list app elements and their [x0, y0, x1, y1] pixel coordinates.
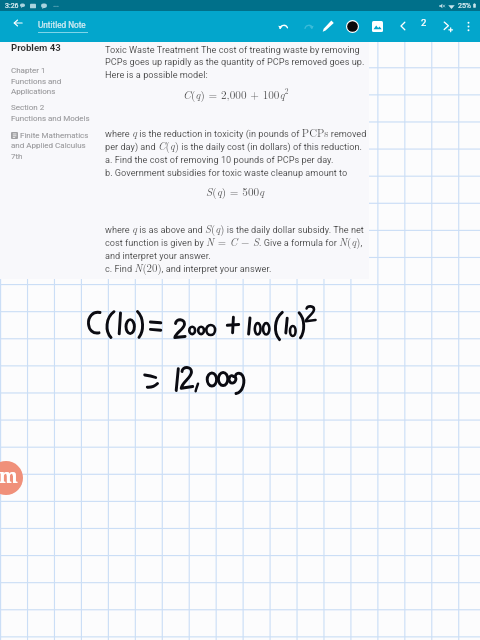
staticText: Section 2 Functions and Models: [11, 103, 90, 123]
button[interactable]: Undo: [272, 15, 294, 37]
button[interactable]: 2: [413, 11, 435, 33]
staticText: Problem 43: [11, 42, 61, 53]
staticText: Chapter 1 Functions and Applications: [11, 66, 62, 96]
staticText: Untitled Note: [38, 20, 86, 30]
staticText: and Applied Calculus 7th: [11, 141, 86, 161]
button[interactable]: Insert image: [366, 15, 388, 37]
button[interactable]: Pen: [317, 15, 339, 37]
staticText: 2: [421, 17, 427, 28]
staticText: Toxic Waste Treatment The cost of treati…: [105, 44, 365, 80]
staticText: S(q) = 500q: [206, 183, 265, 199]
button[interactable]: Back: [6, 11, 29, 34]
button[interactable]: More options: [457, 15, 479, 37]
staticText: Finite Mathematics: [20, 131, 89, 140]
button[interactable]: Add page: [436, 15, 458, 37]
staticText: C(q) = 2,000 + 100q2: [183, 85, 289, 102]
staticText: m: [0, 463, 18, 489]
button[interactable]: Colour: [341, 15, 363, 37]
button[interactable]: Previous page: [392, 15, 414, 37]
button[interactable]: Redo: [297, 15, 319, 37]
button[interactable]: Untitled Note: [38, 20, 88, 33]
staticText: 3:26: [5, 2, 19, 10]
staticText: where q is the reduction in toxicity (in…: [105, 125, 367, 178]
staticText: 25%: [458, 2, 471, 10]
staticText: where q is as above and S(q) is the dail…: [105, 221, 364, 275]
